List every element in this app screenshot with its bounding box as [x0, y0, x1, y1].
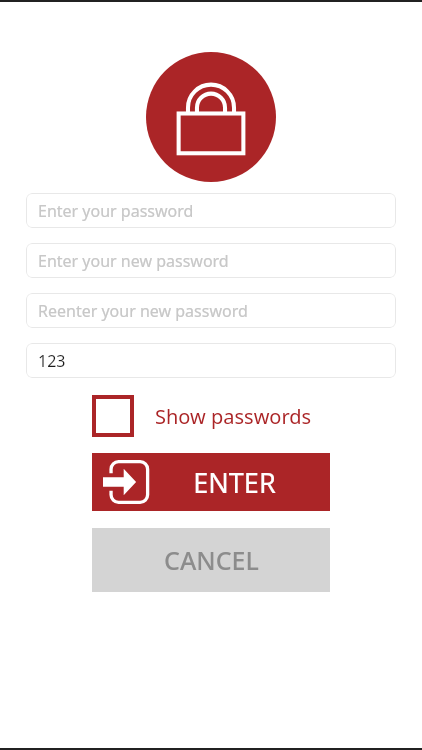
staticText: 123 [38, 350, 66, 372]
staticText: ENTER [193, 464, 276, 501]
staticText: Enter your new password [38, 250, 229, 272]
staticText: CANCEL [164, 543, 259, 577]
button[interactable]: Enter your new password [26, 243, 396, 278]
button[interactable]: CANCEL [92, 528, 330, 592]
button[interactable]: Show passwords [92, 395, 330, 437]
staticText: Show passwords [155, 403, 312, 430]
button[interactable]: Reenter your new password [26, 293, 396, 328]
staticText: Enter your password [38, 200, 194, 222]
other: Enter [103, 460, 149, 504]
button[interactable]: 123 [26, 343, 396, 378]
staticText: Reenter your new password [38, 300, 248, 322]
button[interactable]: Enter your password [26, 193, 396, 228]
button[interactable]: Enter [92, 453, 330, 511]
